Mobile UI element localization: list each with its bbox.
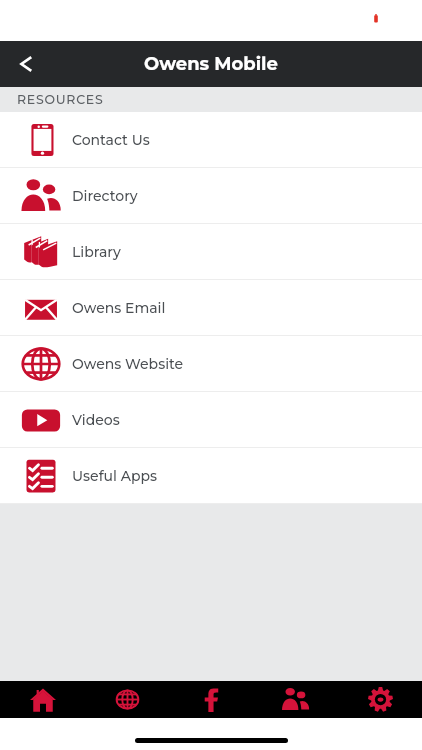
staticText: RESOURCES [17, 92, 104, 107]
button[interactable]: Back [0, 41, 52, 87]
button[interactable]: Website [85, 681, 170, 718]
staticText: Useful Apps [72, 467, 158, 484]
button[interactable]: Directory [0, 168, 422, 223]
button[interactable]: Settings [338, 681, 422, 718]
button[interactable]: Directory [254, 681, 338, 718]
button[interactable]: Contact Us [0, 112, 422, 167]
staticText: Library [72, 243, 121, 260]
button[interactable]: Facebook [170, 681, 254, 718]
staticText: Videos [72, 411, 120, 428]
staticText: Owens Website [72, 355, 184, 372]
staticText: Owens Email [72, 299, 166, 316]
staticText: Contact Us [72, 131, 150, 148]
button[interactable]: Home [0, 681, 85, 718]
button[interactable]: Videos [0, 392, 422, 447]
button[interactable]: Useful Apps [0, 448, 422, 503]
button[interactable]: Library [0, 224, 422, 279]
staticText: Directory [72, 187, 138, 204]
staticText: Owens Mobile [144, 53, 278, 75]
button[interactable]: Owens Website [0, 336, 422, 391]
button[interactable]: Owens Email [0, 280, 422, 335]
